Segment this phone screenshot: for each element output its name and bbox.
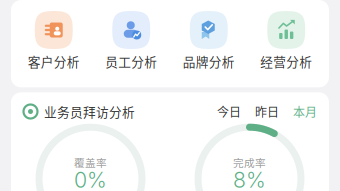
staticText: 业务员拜访分析: [44, 102, 135, 121]
button[interactable]: 今日: [217, 103, 241, 120]
button[interactable]: 本月: [279, 103, 317, 120]
button[interactable]: 昨日: [241, 103, 279, 120]
button[interactable]: 经营分析: [247, 11, 325, 70]
staticText: 员工分析: [105, 52, 157, 70]
staticText: 本月: [293, 103, 317, 120]
staticText: 8%: [233, 167, 266, 191]
staticText: 覆盖率: [74, 155, 107, 170]
staticText: 0%: [74, 167, 107, 191]
staticText: 昨日: [255, 103, 279, 120]
button[interactable]: 员工分析: [92, 11, 170, 70]
staticText: 今日: [217, 103, 241, 120]
staticText: 客户分析: [28, 52, 80, 70]
button[interactable]: 客户分析: [15, 11, 92, 70]
staticText: 经营分析: [260, 52, 312, 70]
staticText: 品牌分析: [183, 52, 235, 70]
button[interactable]: 品牌分析: [170, 11, 247, 70]
staticText: 完成率: [233, 155, 266, 170]
